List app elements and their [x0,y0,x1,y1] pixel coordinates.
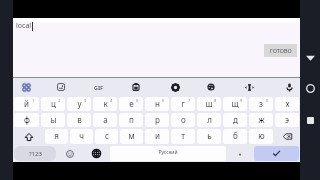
staticText: Русский [158,149,178,156]
staticText: е [129,98,134,109]
button[interactable]: Stickers [52,78,70,96]
button[interactable]: Clipboard [127,78,145,96]
staticText: б [233,130,238,141]
button[interactable]: ю [249,129,273,144]
staticText: ф [24,114,30,125]
staticText: ?123 [29,150,42,158]
staticText: local [16,21,32,31]
staticText: 8 [214,98,217,103]
button[interactable]: а [93,113,117,127]
button[interactable]: Русский [110,146,226,161]
staticText: ь [207,130,212,141]
button[interactable]: Period [227,145,253,162]
staticText: м [128,130,135,141]
button[interactable]: щ [223,97,247,111]
staticText: о [181,114,186,125]
button[interactable]: п [119,113,143,127]
staticText: ж [258,114,265,125]
staticText: GIF [94,84,104,91]
button[interactable]: к [93,97,117,111]
button[interactable]: х [275,97,299,111]
staticText: 9 [240,98,243,103]
button[interactable]: м [120,129,143,144]
button[interactable]: ч [70,129,93,144]
button[interactable]: у [67,97,91,111]
button[interactable]: Enter [254,146,299,161]
button[interactable]: р [145,113,169,127]
button[interactable]: Backspace [274,128,300,145]
button[interactable]: в [67,113,91,127]
button[interactable]: э [275,113,299,127]
button[interactable]: ж [249,113,273,127]
staticText: п [129,114,134,125]
staticText: з [259,98,263,109]
staticText: д [233,114,238,125]
staticText: 3 [84,98,87,103]
staticText: ч [79,130,84,141]
staticText: 0 [266,98,269,103]
staticText: р [155,114,160,125]
staticText: с [105,130,109,141]
button[interactable]: Back [302,49,319,66]
staticText: к [103,98,108,109]
button[interactable]: Text editing [240,78,258,96]
staticText: я [54,130,59,141]
staticText: ш [205,98,213,109]
button[interactable]: Home [302,80,319,97]
button[interactable]: л [197,113,221,127]
button[interactable]: ГОТОВО [264,44,297,57]
staticText: 5 [136,98,139,103]
button[interactable]: ?123 [14,146,56,161]
staticText: х [285,98,290,109]
button[interactable]: н [145,97,169,111]
button[interactable]: д [223,113,247,127]
button[interactable]: Recents [302,112,319,129]
staticText: ы [50,114,57,125]
button[interactable]: Language [83,145,109,162]
staticText: а [103,114,108,125]
staticText: и [155,130,160,141]
staticText: 1 [32,98,35,103]
staticText: н [155,98,160,109]
staticText: в [77,114,82,125]
button[interactable]: ц [41,97,65,111]
button[interactable]: ш [197,97,221,111]
staticText: т [181,130,185,141]
button[interactable]: Voice input [280,78,298,96]
staticText: 6 [162,98,165,103]
button[interactable]: Emoji [57,145,83,162]
button[interactable]: й [14,97,39,111]
button[interactable]: з [249,97,273,111]
staticText: 2 [58,98,61,103]
staticText: г [181,98,185,109]
button[interactable]: я [45,129,68,144]
button[interactable]: ф [14,113,39,127]
staticText: 7 [188,98,191,103]
button[interactable]: ь [197,129,221,144]
staticText: ГОТОВО [270,47,292,54]
button[interactable]: о [171,113,195,127]
button[interactable]: т [171,129,195,144]
button[interactable]: б [223,129,247,144]
button[interactable]: Apps [17,78,35,96]
button[interactable]: ы [41,113,65,127]
staticText: щ [231,98,239,109]
button[interactable]: с [95,129,118,144]
staticText: ц [51,98,56,109]
button[interactable]: е [119,97,143,111]
staticText: ю [258,130,265,141]
button[interactable]: GIF [90,78,108,96]
button[interactable]: Shift [13,128,44,145]
staticText: л [207,114,212,125]
button[interactable]: г [171,97,195,111]
staticText: у [77,98,82,109]
button[interactable]: и [145,129,169,144]
staticText: э [285,114,289,125]
button[interactable]: Theme [202,78,220,96]
staticText: 4 [110,98,113,103]
button[interactable]: Settings [166,78,184,96]
staticText: й [24,98,29,109]
